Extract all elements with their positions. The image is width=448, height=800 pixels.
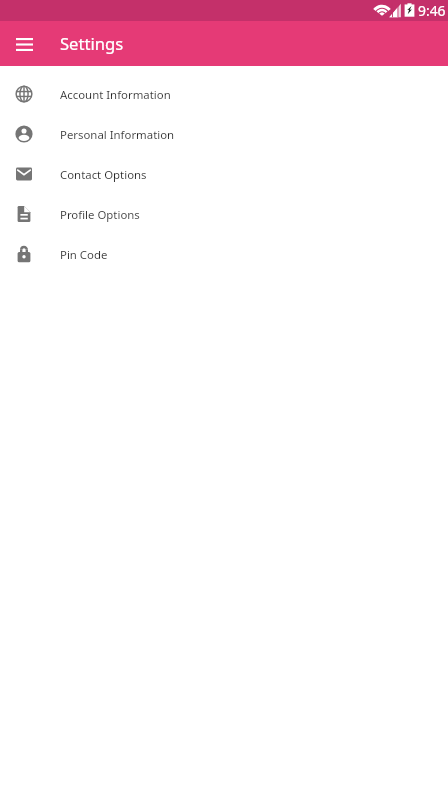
staticText: Settings <box>60 32 124 55</box>
staticText: Pin Code <box>60 247 108 263</box>
staticText: Account Information <box>60 87 171 103</box>
staticText: Contact Options <box>60 167 147 183</box>
button[interactable]: Account Information <box>0 74 448 114</box>
staticText: Profile Options <box>60 207 140 223</box>
button[interactable]: Personal Information <box>0 114 448 154</box>
button[interactable]: Profile Options <box>0 194 448 234</box>
staticText: 9:46 <box>418 1 446 20</box>
staticText: Personal Information <box>60 127 175 143</box>
button[interactable]: Open navigation menu <box>8 28 40 60</box>
button[interactable]: Pin Code <box>0 234 448 274</box>
button[interactable]: Contact Options <box>0 154 448 194</box>
